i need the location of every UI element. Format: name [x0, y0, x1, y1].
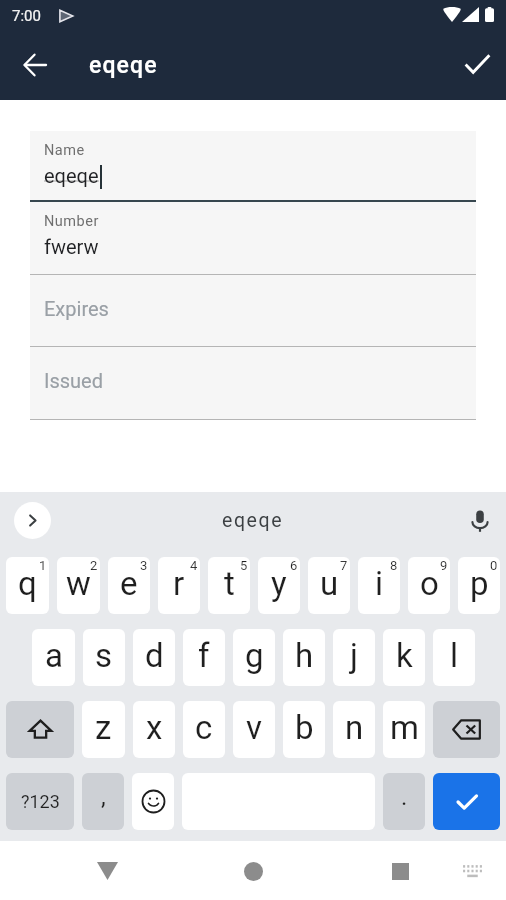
staticText: 7: [340, 558, 348, 573]
button[interactable]: Back: [83, 847, 131, 895]
button[interactable]: x: [133, 701, 175, 758]
staticText: r: [173, 564, 185, 603]
staticText: 8: [390, 558, 398, 573]
button[interactable]: Expand suggestions: [14, 502, 51, 539]
staticText: g: [245, 636, 264, 675]
button[interactable]: Save: [453, 40, 501, 88]
staticText: .: [401, 783, 408, 811]
staticText: y: [271, 564, 287, 603]
button[interactable]: m: [383, 701, 425, 758]
button[interactable]: Home: [229, 847, 277, 895]
staticText: i: [375, 564, 384, 603]
staticText: l: [450, 636, 459, 675]
button[interactable]: o: [408, 557, 450, 614]
staticText: t: [224, 564, 235, 603]
staticText: n: [345, 708, 364, 747]
button[interactable]: w: [57, 557, 100, 614]
staticText: fwerw: [44, 235, 99, 258]
staticText: b: [295, 708, 314, 747]
staticText: ?123: [21, 791, 60, 812]
button[interactable]: .: [383, 773, 425, 830]
staticText: o: [420, 564, 439, 603]
button[interactable]: n: [333, 701, 375, 758]
staticText: 4: [190, 558, 198, 573]
staticText: p: [470, 564, 489, 603]
staticText: eqeqe: [89, 52, 158, 79]
staticText: Issued: [44, 369, 103, 392]
staticText: u: [320, 564, 339, 603]
staticText: s: [95, 636, 113, 675]
button[interactable]: a: [32, 629, 75, 686]
staticText: x: [146, 708, 163, 747]
button[interactable]: l: [433, 629, 475, 686]
button[interactable]: t: [208, 557, 250, 614]
staticText: 0: [490, 558, 498, 573]
button[interactable]: j: [333, 629, 375, 686]
staticText: 9: [440, 558, 448, 573]
button[interactable]: i: [358, 557, 400, 614]
button[interactable]: y: [258, 557, 300, 614]
button[interactable]: s: [83, 629, 125, 686]
button[interactable]: Enter: [433, 773, 500, 830]
button[interactable]: ,: [82, 773, 124, 830]
button[interactable]: p: [458, 557, 500, 614]
staticText: 2: [90, 558, 98, 573]
button[interactable]: g: [233, 629, 275, 686]
staticText: d: [145, 636, 164, 675]
button[interactable]: u: [308, 557, 350, 614]
button[interactable]: Shift: [6, 701, 74, 758]
button[interactable]: k: [383, 629, 425, 686]
button[interactable]: f: [183, 629, 225, 686]
staticText: Number: [44, 213, 99, 230]
staticText: eqeqe: [222, 509, 284, 532]
staticText: ,: [101, 783, 106, 811]
staticText: e: [120, 564, 138, 603]
staticText: Name: [44, 142, 85, 159]
button[interactable]: h: [283, 629, 325, 686]
button[interactable]: Switch keyboard: [453, 852, 491, 890]
staticText: k: [396, 636, 413, 675]
staticText: 3: [140, 558, 148, 573]
button[interactable]: Recents: [376, 847, 424, 895]
staticText: q: [18, 564, 37, 603]
staticText: Expires: [44, 297, 109, 320]
staticText: c: [195, 708, 213, 747]
button[interactable]: Backspace: [433, 701, 500, 758]
button[interactable]: d: [133, 629, 175, 686]
staticText: v: [246, 708, 262, 747]
staticText: z: [95, 708, 112, 747]
staticText: j: [350, 636, 358, 675]
button[interactable]: ?123: [6, 773, 74, 830]
button[interactable]: b: [283, 701, 325, 758]
button[interactable]: e: [108, 557, 150, 614]
button[interactable]: q: [6, 557, 49, 614]
button[interactable]: r: [158, 557, 200, 614]
button[interactable]: Back: [11, 41, 59, 89]
staticText: a: [45, 636, 63, 675]
button[interactable]: c: [183, 701, 225, 758]
staticText: eqeqe: [44, 164, 99, 187]
staticText: 1: [39, 558, 47, 573]
staticText: h: [295, 636, 314, 675]
button[interactable]: Emoji: [132, 773, 174, 830]
staticText: 7:00: [12, 7, 41, 25]
staticText: 5: [240, 558, 248, 573]
staticText: f: [198, 636, 210, 675]
staticText: w: [66, 564, 91, 603]
button[interactable]: z: [82, 701, 125, 758]
staticText: 6: [290, 558, 298, 573]
button[interactable]: v: [233, 701, 275, 758]
staticText: m: [390, 708, 419, 747]
button[interactable]: Voice input: [460, 501, 500, 541]
